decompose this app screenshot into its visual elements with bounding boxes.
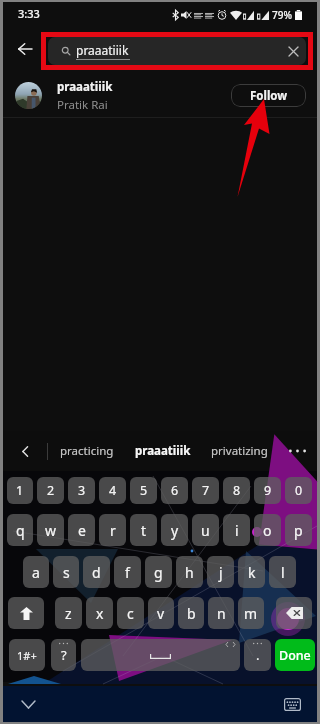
button[interactable]: k (238, 556, 265, 588)
staticText: 3:33 (18, 6, 40, 21)
button[interactable]: . (244, 639, 271, 671)
staticText: e (78, 521, 86, 540)
button[interactable]: praaatiiik (125, 431, 201, 471)
button[interactable]: y (161, 514, 188, 546)
button[interactable]: practicing (48, 431, 125, 471)
staticText: h (185, 563, 194, 582)
staticText: o (263, 521, 272, 540)
button[interactable]: i (223, 514, 250, 546)
staticText: privatizing (211, 443, 268, 459)
button[interactable]: m (238, 597, 264, 629)
button[interactable]: h (176, 556, 203, 588)
button[interactable]: 5 (130, 477, 157, 504)
button[interactable]: Change keyboard (277, 689, 307, 719)
staticText: a (32, 563, 40, 582)
button[interactable]: f (114, 556, 141, 588)
button[interactable]: Back (8, 37, 42, 61)
button[interactable]: 3 (68, 477, 95, 504)
staticText: i (235, 521, 239, 540)
staticText: r (110, 521, 116, 540)
button[interactable]: s (53, 556, 79, 588)
staticText: practicing (60, 443, 114, 459)
button[interactable]: a (23, 556, 49, 588)
button[interactable]: 1#+ (9, 639, 45, 671)
button[interactable]: v (148, 597, 174, 629)
staticText: 2 (47, 482, 55, 499)
button[interactable]: l (269, 556, 296, 588)
staticText: k (248, 563, 256, 582)
button[interactable]: z (55, 597, 82, 629)
button[interactable]: Space (81, 639, 240, 671)
button[interactable]: praaatiiik (48, 37, 306, 65)
staticText: 1#+ (17, 648, 37, 663)
button[interactable]: w (37, 514, 64, 546)
button[interactable]: j (207, 556, 234, 588)
button[interactable]: x (86, 597, 113, 629)
button[interactable]: 6 (161, 477, 188, 504)
button[interactable]: Follow (231, 84, 306, 107)
button[interactable]: 9 (254, 477, 281, 504)
staticText: m (244, 604, 258, 623)
staticText: f (125, 563, 130, 582)
button[interactable]: n (208, 597, 234, 629)
button[interactable]: 2 (37, 477, 64, 504)
staticText: 0 (295, 482, 303, 499)
staticText: Follow (250, 88, 288, 104)
button[interactable]: Shift (8, 597, 44, 629)
staticText: praaatiiik (135, 443, 191, 459)
staticText: 1 (16, 482, 24, 499)
button[interactable]: Clear search (280, 38, 306, 64)
button[interactable]: 1 (7, 477, 33, 504)
staticText: ? (61, 646, 67, 664)
button[interactable]: Previous suggestions (3, 431, 47, 471)
staticText: u (201, 521, 210, 540)
button[interactable]: More options (277, 431, 317, 471)
staticText: 3 (78, 482, 86, 499)
staticText: l (281, 563, 285, 582)
button[interactable]: praaatiiik (3, 73, 317, 118)
button[interactable]: r (99, 514, 126, 546)
staticText: p (294, 521, 303, 540)
button[interactable]: t (130, 514, 157, 546)
button[interactable]: Backspace (276, 597, 312, 629)
button[interactable]: b (178, 597, 204, 629)
staticText: z (65, 604, 72, 623)
button[interactable]: 8 (223, 477, 250, 504)
button[interactable]: Hide keyboard (13, 689, 43, 719)
staticText: g (154, 563, 163, 582)
button[interactable]: o (254, 514, 281, 546)
button[interactable]: Done (275, 639, 315, 671)
staticText: praaatiiik (57, 79, 113, 95)
button[interactable]: c (117, 597, 144, 629)
button[interactable]: 7 (192, 477, 219, 504)
staticText: 4 (109, 482, 117, 499)
button[interactable]: privatizing (201, 431, 277, 471)
button[interactable]: d (83, 556, 110, 588)
button[interactable]: ? (51, 639, 76, 671)
staticText: 7 (202, 482, 210, 499)
button[interactable]: g (145, 556, 172, 588)
staticText: t (141, 521, 147, 540)
staticText: praaatiiik (76, 42, 129, 58)
button[interactable]: 0 (285, 477, 312, 504)
staticText: c (127, 604, 134, 623)
staticText: Pratik Rai (57, 97, 108, 113)
button[interactable]: u (192, 514, 219, 546)
button[interactable]: 4 (99, 477, 126, 504)
staticText: Done (279, 647, 311, 664)
staticText: s (63, 563, 70, 582)
button[interactable]: p (285, 514, 312, 546)
staticText: v (157, 604, 165, 623)
staticText: n (217, 604, 226, 623)
staticText: 79% (272, 8, 292, 22)
staticText: 8 (233, 482, 241, 499)
staticText: y (171, 521, 179, 540)
staticText: 5 (140, 482, 148, 499)
button[interactable]: q (7, 514, 33, 546)
staticText: b (187, 604, 196, 623)
staticText: 9 (264, 482, 272, 499)
staticText: j (219, 563, 223, 582)
button[interactable]: e (68, 514, 95, 546)
staticText: w (45, 521, 57, 540)
staticText: 6 (171, 482, 179, 499)
